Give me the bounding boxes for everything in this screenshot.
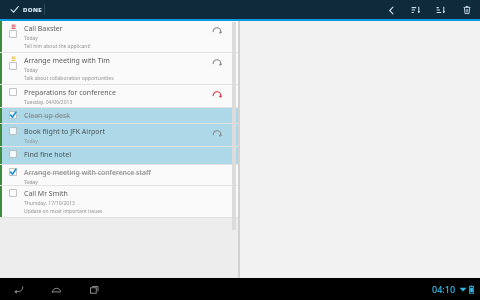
staticText: 04:10 xyxy=(432,283,456,295)
button[interactable]: DONE xyxy=(6,3,46,16)
button[interactable]: Back xyxy=(383,2,399,18)
staticText: Book flight to JFK Airport xyxy=(24,127,105,137)
staticText: Call Mr Smith xyxy=(24,189,68,199)
button[interactable]: Sort ascending xyxy=(408,2,424,18)
staticText: Call Baxster xyxy=(24,24,63,34)
button[interactable]: Home xyxy=(46,279,66,299)
button[interactable]: Mark complete xyxy=(0,186,238,217)
staticText: Tell him about the applicant! xyxy=(24,43,91,50)
staticText: Find fine hotel xyxy=(24,150,72,160)
staticText: Today xyxy=(24,67,38,74)
staticText: Arrange meeting with conference staff xyxy=(24,168,151,178)
staticText: Thursday, 17/10/2013 xyxy=(24,200,75,207)
button[interactable]: Sort descending xyxy=(433,2,449,18)
staticText: Today xyxy=(24,179,38,185)
button[interactable]: Completed xyxy=(9,168,17,176)
button[interactable]: Recents xyxy=(84,279,104,299)
button[interactable]: Completed xyxy=(0,108,238,123)
button[interactable]: Mark complete xyxy=(0,85,238,107)
button[interactable]: Mark complete xyxy=(9,88,17,96)
button[interactable]: Mark complete xyxy=(9,150,17,158)
staticText: Talk about collaboration opportunities xyxy=(24,75,114,82)
staticText: DONE xyxy=(23,6,42,14)
button[interactable]: Mark complete xyxy=(0,147,238,164)
button[interactable]: Mark complete xyxy=(0,21,238,52)
button[interactable]: Recurring task xyxy=(211,89,223,101)
button[interactable]: Mark complete xyxy=(9,127,17,135)
button[interactable]: Mark complete xyxy=(0,124,238,146)
button[interactable]: Completed xyxy=(9,111,17,119)
button[interactable]: Recurring task xyxy=(211,25,223,37)
button[interactable]: Mark complete xyxy=(9,30,17,38)
staticText: Today xyxy=(24,138,38,145)
button[interactable]: Recurring task xyxy=(211,128,223,140)
button[interactable]: Completed xyxy=(0,165,238,185)
button[interactable]: Recurring task xyxy=(211,57,223,69)
button[interactable]: Mark complete xyxy=(9,189,17,197)
button[interactable]: Mark complete xyxy=(0,53,238,84)
staticText: Today xyxy=(24,35,38,42)
button[interactable]: Mark complete xyxy=(9,62,17,70)
button[interactable]: Delete xyxy=(459,2,475,18)
staticText: Arrange meeting with Tim xyxy=(24,56,110,66)
staticText: Clean up desk xyxy=(24,111,71,121)
button[interactable]: Back xyxy=(8,279,28,299)
staticText: Preparations for conference xyxy=(24,88,116,98)
staticText: Tuesday, 04/06/2013 xyxy=(24,99,73,106)
staticText: Update on most important issues xyxy=(24,208,103,215)
